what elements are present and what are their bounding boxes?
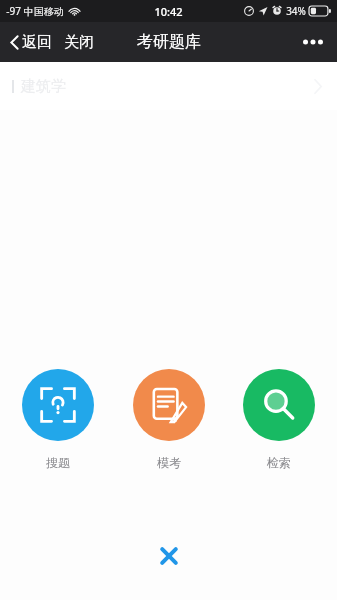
staticText: 建筑学 [21, 77, 66, 96]
staticText: -97 中国移动 [6, 4, 64, 18]
staticText: 返回 [22, 33, 52, 52]
button[interactable]: 模考 [129, 365, 209, 474]
button[interactable]: 搜题 [18, 365, 98, 474]
button[interactable]: More options [297, 33, 329, 51]
button[interactable]: 关闭 [149, 536, 189, 576]
staticText: 搜题 [46, 455, 70, 470]
staticText: 关闭 [64, 33, 94, 52]
staticText: 34% [286, 4, 306, 18]
staticText: 检索 [267, 455, 291, 470]
staticText: 模考 [157, 455, 181, 470]
staticText: 考研题库 [137, 32, 201, 52]
staticText: 10:42 [154, 4, 183, 19]
button[interactable]: 检索 [239, 365, 319, 474]
button[interactable]: 关闭 [60, 27, 98, 58]
button[interactable]: 返回 [6, 27, 56, 58]
